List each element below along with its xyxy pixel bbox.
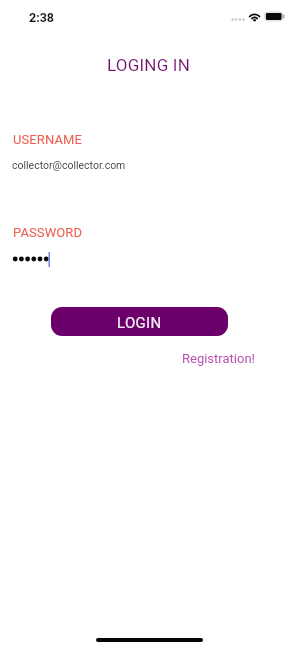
staticText: PASSWORD	[13, 225, 83, 240]
staticText: collector@collector.com	[12, 159, 126, 171]
staticText: 2:38	[29, 10, 55, 25]
button[interactable]: Password field	[0, 219, 300, 273]
other: Cellular signal	[231, 18, 246, 23]
button[interactable]: LOGIN	[51, 307, 228, 336]
staticText: LOGING IN	[107, 55, 190, 75]
staticText: USERNAME	[13, 132, 82, 147]
button[interactable]: Registration!	[178, 345, 251, 369]
other: Wi-Fi	[248, 11, 262, 22]
other: Battery full	[265, 12, 287, 23]
staticText: Registration!	[182, 351, 255, 366]
staticText: LOGIN	[117, 314, 162, 332]
button[interactable]: USERNAME	[0, 126, 300, 178]
